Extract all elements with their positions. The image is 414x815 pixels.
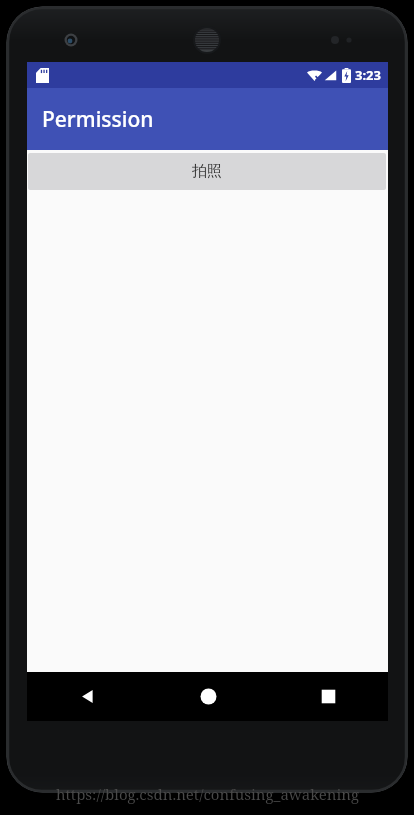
staticText: https://blog.csdn.net/confusing_awakenin… <box>56 784 359 804</box>
staticText: 拍照 <box>192 162 222 181</box>
staticText: 3:23 <box>355 66 381 84</box>
button[interactable]: Back <box>27 672 148 721</box>
button[interactable]: 拍照 <box>28 153 386 190</box>
button[interactable]: Recent apps <box>268 672 388 721</box>
staticText: Permission <box>42 105 154 134</box>
button[interactable]: Home <box>148 672 268 721</box>
